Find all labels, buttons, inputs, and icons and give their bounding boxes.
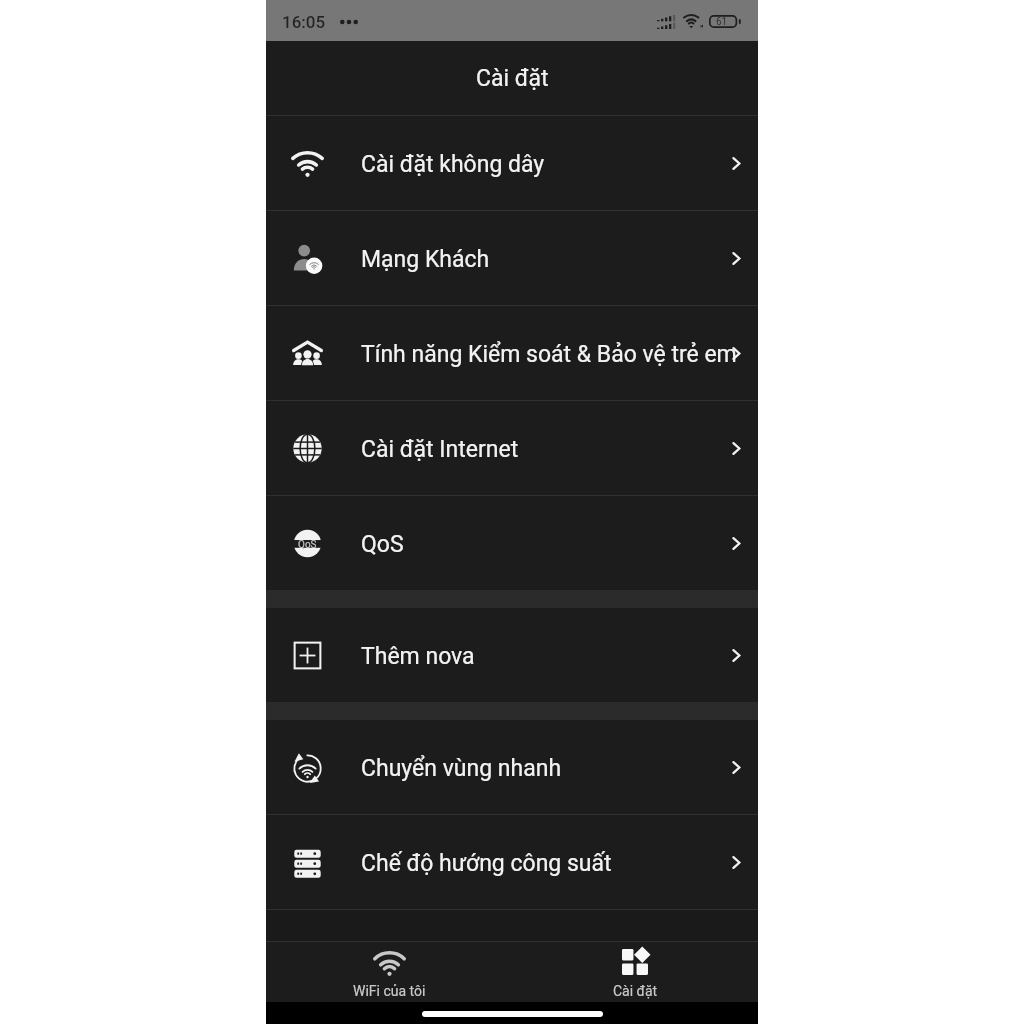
button[interactable]: My WiFi xyxy=(266,942,512,1002)
staticText: Cài đặt Internet xyxy=(361,436,519,463)
button[interactable]: Settings xyxy=(512,942,758,1002)
staticText: Cài đặt xyxy=(613,983,658,999)
staticText: Chuyển vùng nhanh xyxy=(361,755,562,782)
staticText: Chế độ hướng công suất xyxy=(361,850,612,877)
staticText: Cài đặt xyxy=(476,65,549,92)
staticText: Mạng Khách xyxy=(361,246,490,273)
staticText: Tính năng Kiểm soát & Bảo vệ trẻ em xyxy=(361,341,737,368)
button[interactable]: Cài đặt Internet xyxy=(266,401,758,495)
button[interactable]: Cài đặt không dây xyxy=(266,116,758,210)
button[interactable]: Mạng Khách xyxy=(266,211,758,305)
button[interactable]: Chế độ hướng công suất xyxy=(266,815,758,909)
button[interactable]: Thêm nova xyxy=(266,608,758,702)
button[interactable]: QoS xyxy=(266,496,758,590)
staticText: Cài đặt không dây xyxy=(361,151,545,178)
other: My WiFi xyxy=(373,951,406,976)
staticText: Thêm nova xyxy=(361,643,475,670)
button[interactable]: Tính năng Kiểm soát & Bảo vệ trẻ em xyxy=(266,306,758,400)
button[interactable]: Chuyển vùng nhanh xyxy=(266,720,758,814)
staticText: 61 xyxy=(716,16,728,28)
staticText: QoS xyxy=(298,539,317,551)
other: Settings xyxy=(622,949,648,975)
staticText: WiFi của tôi xyxy=(353,983,426,999)
staticText: QoS xyxy=(361,531,404,558)
staticText: 16:05 xyxy=(282,12,326,32)
